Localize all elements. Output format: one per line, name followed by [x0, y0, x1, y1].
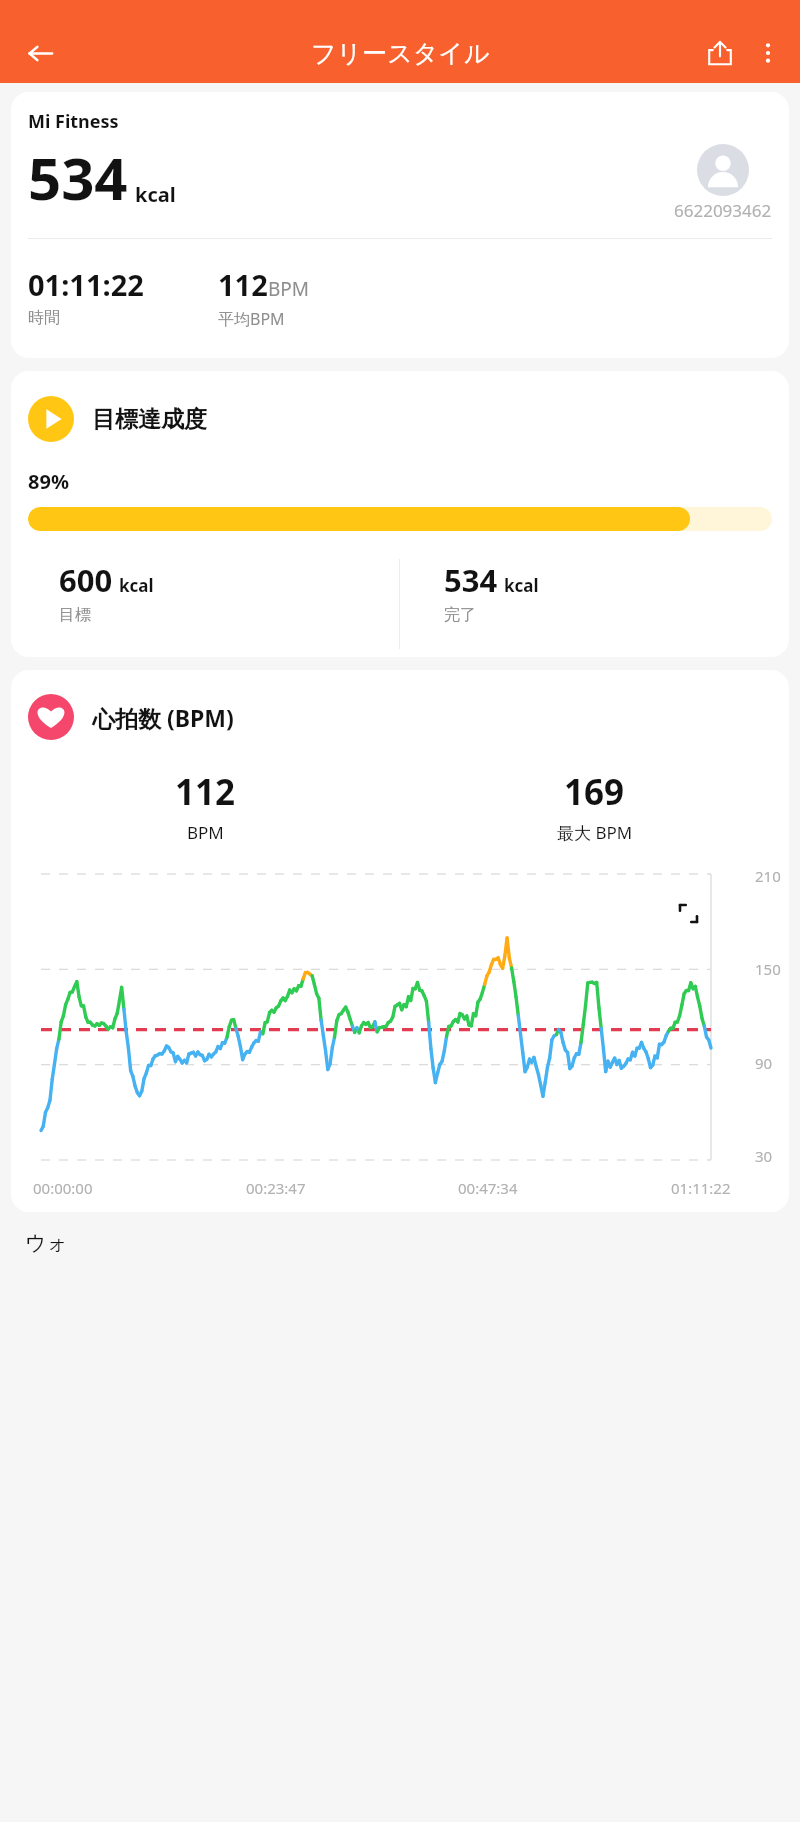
- staticText: 心拍数 (BPM): [92, 702, 234, 733]
- staticText: 89%: [28, 468, 69, 495]
- staticText: 完了: [444, 605, 476, 625]
- staticText: 600: [59, 559, 113, 601]
- staticText: 平均BPM: [218, 308, 285, 330]
- button[interactable]: Share: [696, 29, 744, 77]
- staticText: 01:11:22: [28, 265, 144, 304]
- staticText: 534: [28, 138, 128, 217]
- staticText: 00:00:00: [33, 1178, 93, 1198]
- staticText: 最大 BPM: [557, 821, 633, 844]
- staticText: 6622093462: [674, 199, 772, 222]
- staticText: 210: [755, 866, 781, 886]
- staticText: ウォ: [25, 1230, 68, 1256]
- button[interactable]: Back: [16, 29, 64, 77]
- staticText: 169: [564, 768, 625, 816]
- staticText: 時間: [28, 308, 60, 328]
- staticText: フリースタイル: [311, 38, 490, 69]
- button[interactable]: More options: [744, 29, 792, 77]
- staticText: 30: [755, 1146, 773, 1166]
- staticText: BPM: [187, 821, 224, 844]
- button[interactable]: 目標達成度: [11, 371, 789, 657]
- staticText: Mi Fitness: [28, 109, 119, 134]
- button[interactable]: Expand chart: [667, 892, 709, 934]
- staticText: 534: [444, 559, 498, 601]
- staticText: BPM: [268, 276, 310, 302]
- button[interactable]: 心拍数 (BPM): [11, 670, 789, 1212]
- staticText: 00:23:47: [246, 1178, 306, 1198]
- staticText: kcal: [504, 574, 539, 597]
- staticText: kcal: [119, 574, 154, 597]
- staticText: 90: [755, 1053, 773, 1073]
- staticText: kcal: [135, 181, 176, 208]
- staticText: 目標達成度: [92, 405, 207, 434]
- staticText: 112: [175, 768, 236, 816]
- staticText: 150: [755, 959, 781, 979]
- staticText: 01:11:22: [671, 1178, 731, 1198]
- staticText: 00:47:34: [458, 1178, 518, 1198]
- staticText: 112: [218, 265, 268, 304]
- staticText: 目標: [59, 605, 91, 625]
- button[interactable]: Mi Fitness: [11, 92, 789, 358]
